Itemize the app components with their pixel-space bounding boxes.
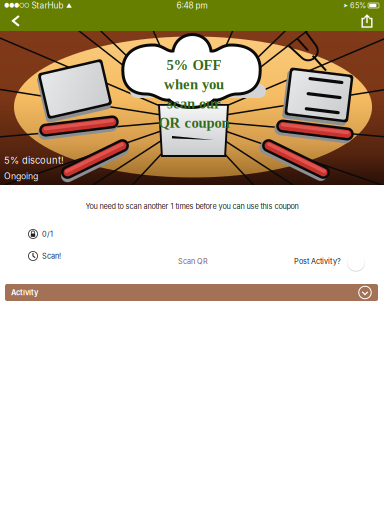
button[interactable]: Post activity	[344, 250, 368, 274]
staticText: when you	[164, 76, 224, 92]
button[interactable]: Scan!	[28, 251, 61, 261]
button[interactable]: Share	[350, 11, 384, 31]
staticText: 0/1	[42, 230, 53, 238]
staticText: 65%	[350, 1, 366, 10]
staticText: QR coupon	[158, 115, 229, 131]
button[interactable]: Back	[0, 11, 32, 31]
staticText: Post Activity?	[294, 257, 341, 266]
staticText: scan our	[167, 95, 221, 112]
button[interactable]: Activity	[5, 284, 378, 301]
staticText: ▲	[66, 2, 72, 9]
staticText: Scan!	[42, 252, 61, 260]
button[interactable]: Scan QR	[178, 257, 208, 266]
staticText: 5% discount!	[4, 155, 64, 166]
staticText: StarHub	[31, 0, 63, 10]
staticText: Scan QR	[178, 257, 208, 266]
staticText: Activity	[11, 288, 38, 297]
staticText: ●●●○○	[4, 2, 29, 9]
staticText: You need to scan another 1 times before …	[85, 202, 298, 211]
staticText: 6:48 pm	[176, 0, 207, 10]
staticText: 5% OFF	[166, 57, 221, 73]
staticText: Ongoing	[4, 171, 38, 181]
staticText: ➤	[343, 2, 348, 9]
